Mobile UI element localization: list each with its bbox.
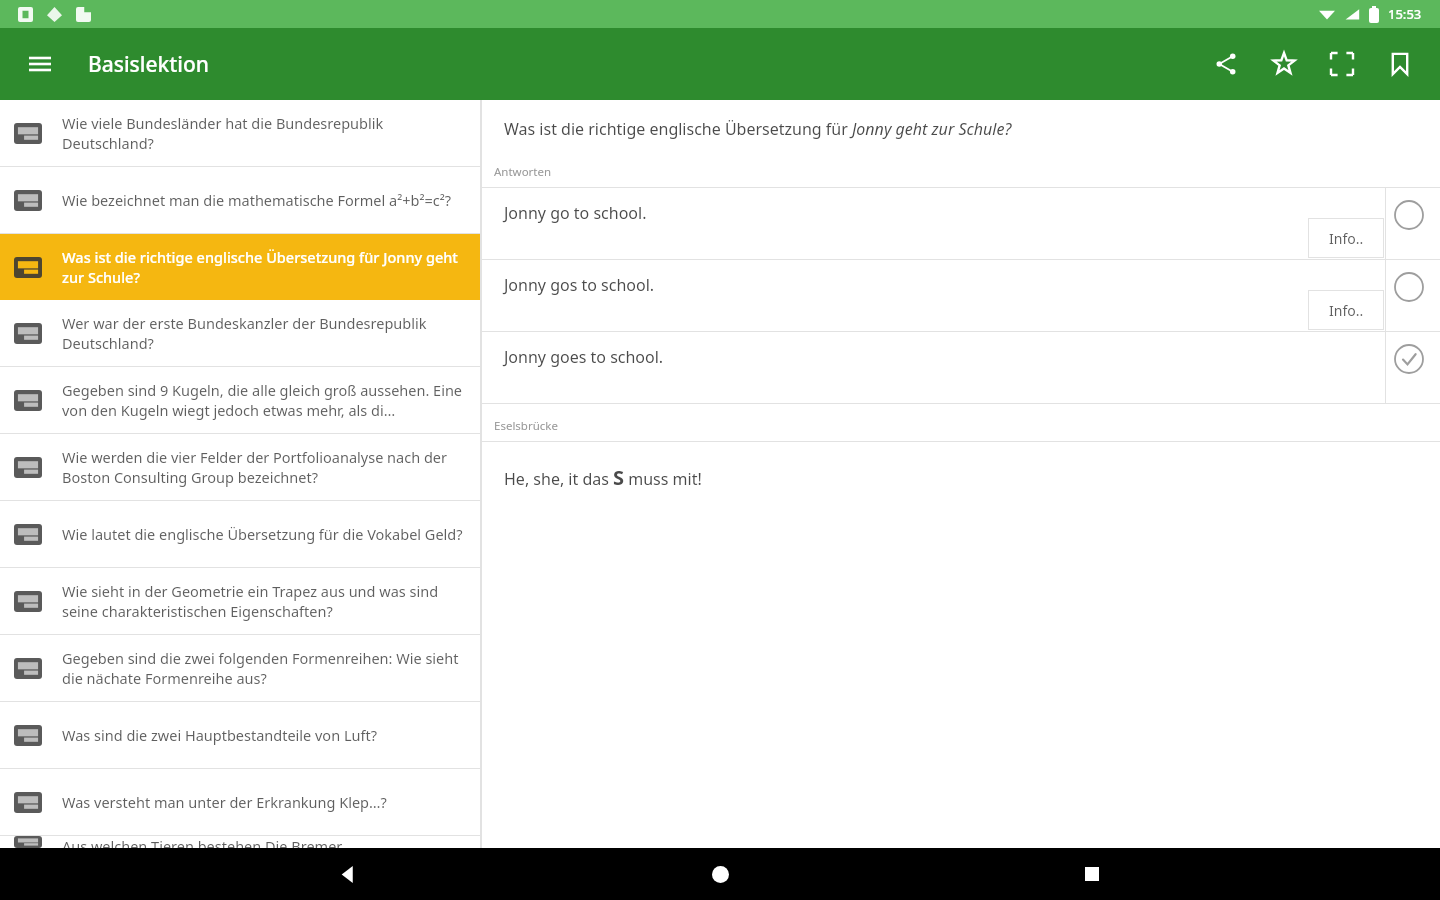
button[interactable]: Select answer	[1392, 198, 1426, 232]
button[interactable]: Open navigation menu	[18, 42, 62, 86]
button[interactable]: Gegeben sind die zwei folgenden Formenre…	[0, 635, 480, 701]
staticText: Jonny gos to school.	[504, 274, 655, 296]
button[interactable]: Wie viele Bundesländer hat die Bundesrep…	[0, 100, 480, 166]
button[interactable]: Wie bezeichnet man die mathematische For…	[0, 167, 480, 233]
staticText: Wie lautet die englische Übersetzung für…	[62, 524, 463, 544]
button[interactable]: Was versteht man unter der Erkrankung Kl…	[0, 769, 480, 835]
button[interactable]: Was sind die zwei Hauptbestandteile von …	[0, 702, 480, 768]
button[interactable]: Info..	[1308, 290, 1384, 330]
staticText: He, she, it das S muss mit!	[504, 464, 702, 491]
button[interactable]: Jonny gos to school.	[482, 260, 1440, 331]
staticText: 15:53	[1388, 5, 1422, 23]
button[interactable]: Info..	[1308, 218, 1384, 258]
staticText: Jonny go to school.	[504, 202, 647, 224]
staticText: Aus welchen Tieren bestehen Die Bremer	[62, 836, 343, 848]
button[interactable]: Was ist die richtige englische Übersetzu…	[0, 234, 480, 300]
button[interactable]: Bookmark	[1376, 40, 1424, 88]
staticText: Gegeben sind 9 Kugeln, die alle gleich g…	[62, 380, 470, 421]
button[interactable]: Select answer	[1392, 270, 1426, 304]
button[interactable]: Aus welchen Tieren bestehen Die Bremer	[0, 836, 480, 848]
staticText: Was ist die richtige englische Übersetzu…	[62, 247, 470, 288]
staticText: Gegeben sind die zwei folgenden Formenre…	[62, 648, 470, 689]
staticText: Wie viele Bundesländer hat die Bundesrep…	[62, 113, 470, 154]
staticText: Basislektion	[88, 50, 210, 79]
button[interactable]: Share	[1202, 40, 1250, 88]
button[interactable]: Gegeben sind 9 Kugeln, die alle gleich g…	[0, 367, 480, 433]
button[interactable]: Favorite	[1260, 40, 1308, 88]
button[interactable]: Wie werden die vier Felder der Portfolio…	[0, 434, 480, 500]
staticText: Was sind die zwei Hauptbestandteile von …	[62, 725, 377, 745]
staticText: Wie werden die vier Felder der Portfolio…	[62, 447, 470, 488]
button[interactable]: Back	[324, 850, 372, 898]
staticText: Wie bezeichnet man die mathematische For…	[62, 190, 452, 210]
button[interactable]: Jonny goes to school.	[482, 332, 1440, 403]
button[interactable]: Jonny go to school.	[482, 188, 1440, 259]
button[interactable]: Recent apps	[1068, 850, 1116, 898]
button[interactable]: Correct answer	[1392, 342, 1426, 376]
button[interactable]: Fullscreen	[1318, 40, 1366, 88]
button[interactable]: Wie sieht in der Geometrie ein Trapez au…	[0, 568, 480, 634]
staticText: Was ist die richtige englische Übersetzu…	[504, 118, 1012, 140]
staticText: Info..	[1329, 229, 1364, 248]
staticText: Was versteht man unter der Erkrankung Kl…	[62, 792, 387, 812]
button[interactable]: Home	[696, 850, 744, 898]
staticText: Info..	[1329, 301, 1364, 320]
staticText: Wer war der erste Bundeskanzler der Bund…	[62, 313, 470, 354]
button[interactable]: Wie lautet die englische Übersetzung für…	[0, 501, 480, 567]
button[interactable]: Wer war der erste Bundeskanzler der Bund…	[0, 300, 480, 366]
staticText: Jonny goes to school.	[504, 346, 664, 368]
staticText: Wie sieht in der Geometrie ein Trapez au…	[62, 581, 470, 622]
staticText: Antworten	[494, 164, 552, 180]
staticText: Eselsbrücke	[494, 418, 558, 434]
